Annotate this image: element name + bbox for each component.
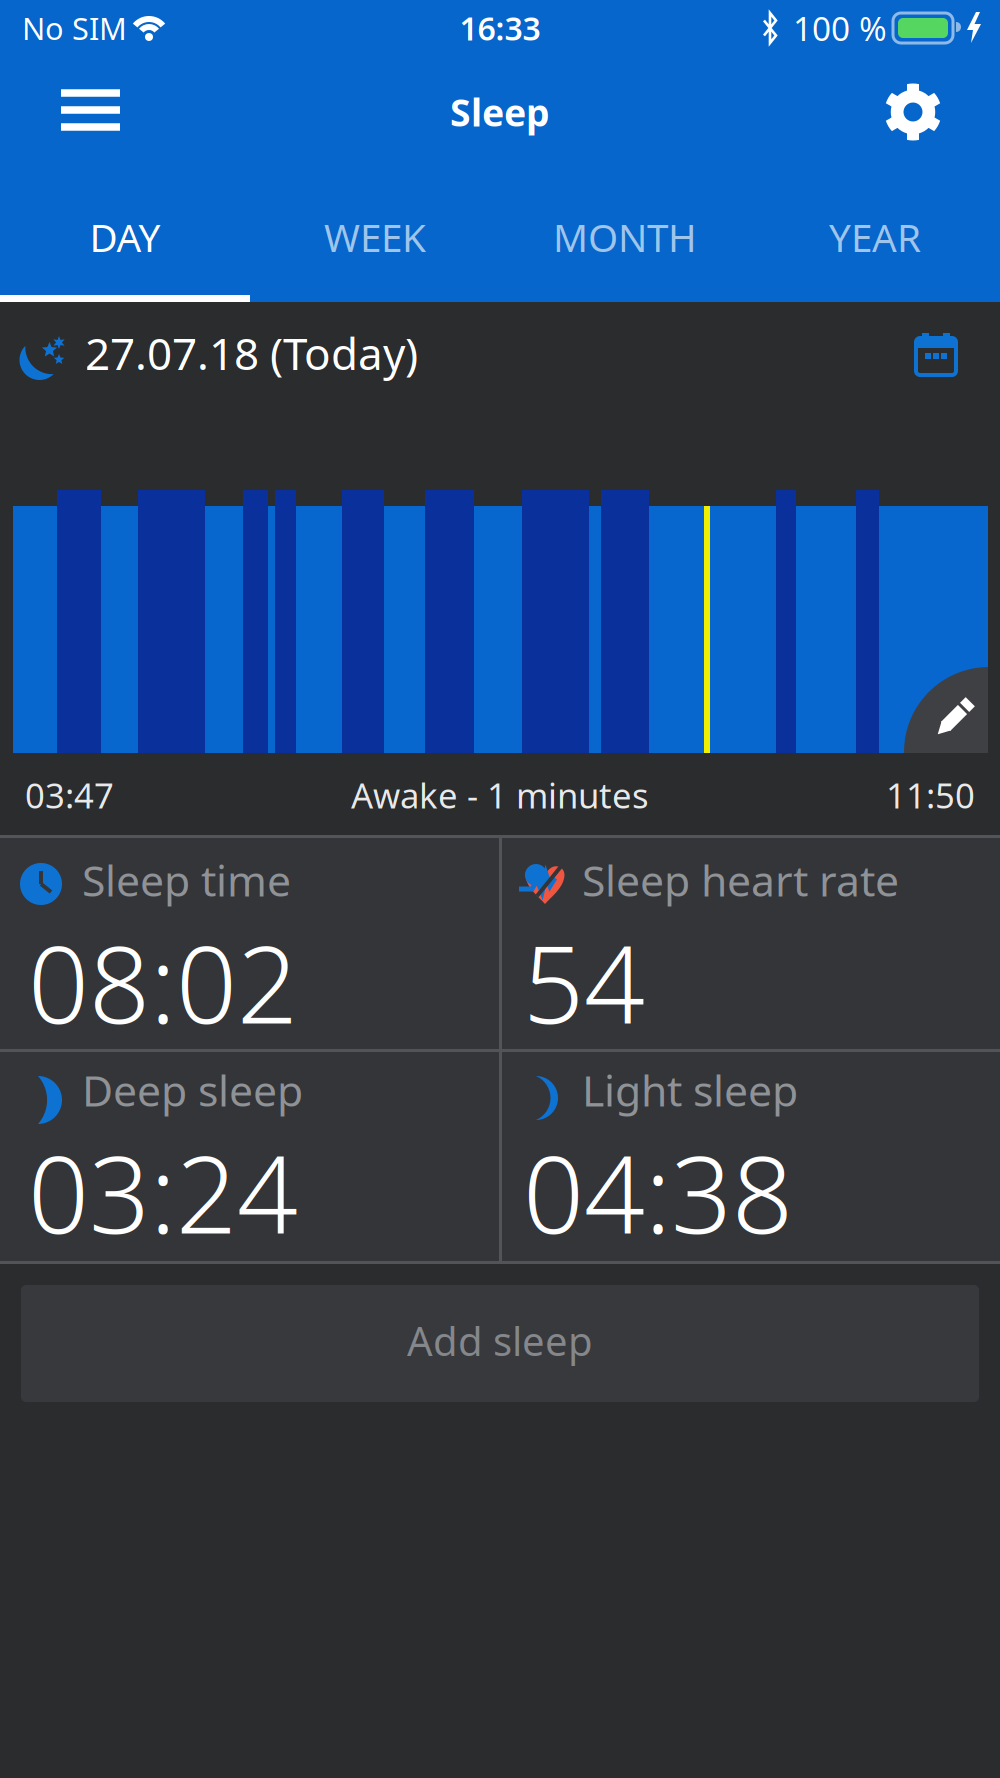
staticText: 04:38 [523,1121,793,1263]
button[interactable] [906,325,966,385]
staticText: Light sleep [582,1062,798,1118]
staticText: Deep sleep [82,1062,303,1118]
staticText: 11:50 [886,772,975,818]
staticText: 03:47 [25,772,114,818]
staticText: 16:33 [459,7,540,49]
button[interactable]: MONTH [500,172,750,302]
staticText: Sleep [450,87,550,137]
staticText: 100 % [793,6,887,50]
staticText: DAY [89,211,160,263]
button[interactable]: WEEK [250,172,500,302]
button[interactable] [873,72,953,152]
staticText: Sleep time [82,852,291,908]
staticText: WEEK [324,211,426,263]
staticText: 08:02 [28,911,298,1053]
button[interactable]: DAY [0,172,250,302]
staticText: Add sleep [407,1314,593,1367]
staticText: Awake - 1 minutes [351,772,649,818]
staticText: 03:24 [28,1121,298,1263]
button[interactable] [45,70,135,150]
staticText: 27.07.18 (Today) [85,324,418,382]
staticText: No SIM [22,8,127,48]
button[interactable] [904,667,1000,837]
staticText: MONTH [553,211,697,263]
staticText: Sleep heart rate [582,852,899,908]
staticText: 54 [523,911,645,1053]
button[interactable]: Add sleep [21,1285,979,1402]
button[interactable]: YEAR [750,172,1000,302]
staticText: YEAR [829,211,921,263]
